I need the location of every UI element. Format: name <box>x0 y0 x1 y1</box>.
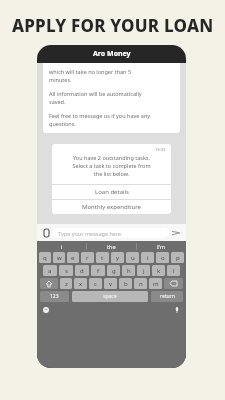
button[interactable]: g <box>107 265 120 276</box>
staticText: Monthly expenditure <box>82 203 141 211</box>
button[interactable]: l <box>167 265 180 276</box>
button[interactable]: x <box>74 278 87 289</box>
button[interactable]: n <box>134 278 147 289</box>
staticText: Type your message here <box>58 230 122 237</box>
staticText: e <box>71 254 75 262</box>
staticText: I'm <box>157 243 166 250</box>
button[interactable]: c <box>89 278 102 289</box>
button[interactable]: i <box>141 252 154 263</box>
staticText: g <box>112 267 116 275</box>
button[interactable]: Send <box>169 226 182 239</box>
staticText: the <box>107 243 116 250</box>
button[interactable]: space <box>72 291 148 302</box>
staticText: b <box>124 280 128 288</box>
button[interactable]: h <box>122 265 135 276</box>
staticText: x <box>79 280 83 288</box>
button[interactable]: m <box>149 278 162 289</box>
button[interactable]: u <box>126 252 139 263</box>
button[interactable]: return <box>151 291 183 302</box>
staticText: i <box>61 243 63 250</box>
staticText: q <box>43 254 47 262</box>
staticText: l <box>173 267 175 275</box>
staticText: f <box>97 267 100 275</box>
staticText: APPLY FOR YOUR LOAN <box>12 14 214 37</box>
button[interactable]: o <box>156 252 169 263</box>
staticText: k <box>157 267 161 275</box>
button[interactable]: Voice input <box>173 306 181 314</box>
button[interactable]: b <box>119 278 132 289</box>
staticText: s <box>65 267 68 275</box>
staticText: o <box>161 254 165 262</box>
staticText: v <box>109 280 113 288</box>
button[interactable]: w <box>53 252 65 263</box>
button[interactable]: a <box>43 265 57 276</box>
button[interactable]: Backspace <box>164 278 183 289</box>
button[interactable]: p <box>171 252 184 263</box>
staticText: d <box>80 267 84 275</box>
button[interactable]: i <box>37 241 86 252</box>
button[interactable]: d <box>75 265 89 276</box>
button[interactable]: Monthly expenditure <box>52 200 171 214</box>
button[interactable]: Loan details <box>52 185 171 199</box>
staticText: All information will be automatically sa… <box>49 90 142 106</box>
staticText: t <box>101 254 104 262</box>
staticText: 123 <box>50 293 59 300</box>
button[interactable]: r <box>81 252 94 263</box>
staticText: Feel free to message us if you have any … <box>49 112 151 128</box>
staticText: i <box>147 254 149 262</box>
staticText: return <box>160 293 175 300</box>
staticText: z <box>65 280 68 288</box>
staticText: y <box>116 254 120 262</box>
staticText: w <box>57 254 62 262</box>
button[interactable]: I'm <box>137 241 186 252</box>
button[interactable]: z <box>60 278 72 289</box>
button[interactable]: Type your message here <box>52 228 169 238</box>
staticText: h <box>127 267 131 275</box>
button[interactable]: q <box>39 252 51 263</box>
staticText: j <box>143 267 145 275</box>
button[interactable]: Shift <box>40 278 58 289</box>
staticText: a <box>48 267 52 275</box>
button[interactable]: k <box>152 265 165 276</box>
staticText: c <box>94 280 97 288</box>
button[interactable]: e <box>67 252 79 263</box>
button[interactable]: v <box>104 278 117 289</box>
button[interactable]: y <box>111 252 124 263</box>
staticText: u <box>131 254 135 262</box>
button[interactable]: t <box>96 252 109 263</box>
staticText: which will take no longer than 5 minutes… <box>49 68 132 84</box>
staticText: n <box>139 280 143 288</box>
button[interactable]: s <box>59 265 73 276</box>
staticText: You have 2 outstanding tasks. Select a t… <box>57 154 166 178</box>
button[interactable]: 123 <box>40 291 69 302</box>
button[interactable]: the <box>87 241 136 252</box>
staticText: Loan details <box>95 188 129 196</box>
button[interactable]: f <box>91 265 105 276</box>
staticText: m <box>153 280 159 288</box>
button[interactable]: j <box>137 265 150 276</box>
staticText: space <box>103 293 117 300</box>
staticText: p <box>176 254 180 262</box>
staticText: Aro Money <box>93 49 131 59</box>
button[interactable]: Emoji <box>42 306 50 314</box>
staticText: r <box>86 254 89 262</box>
staticText: 13:33 <box>155 147 166 152</box>
button[interactable]: Attach file <box>41 227 52 238</box>
